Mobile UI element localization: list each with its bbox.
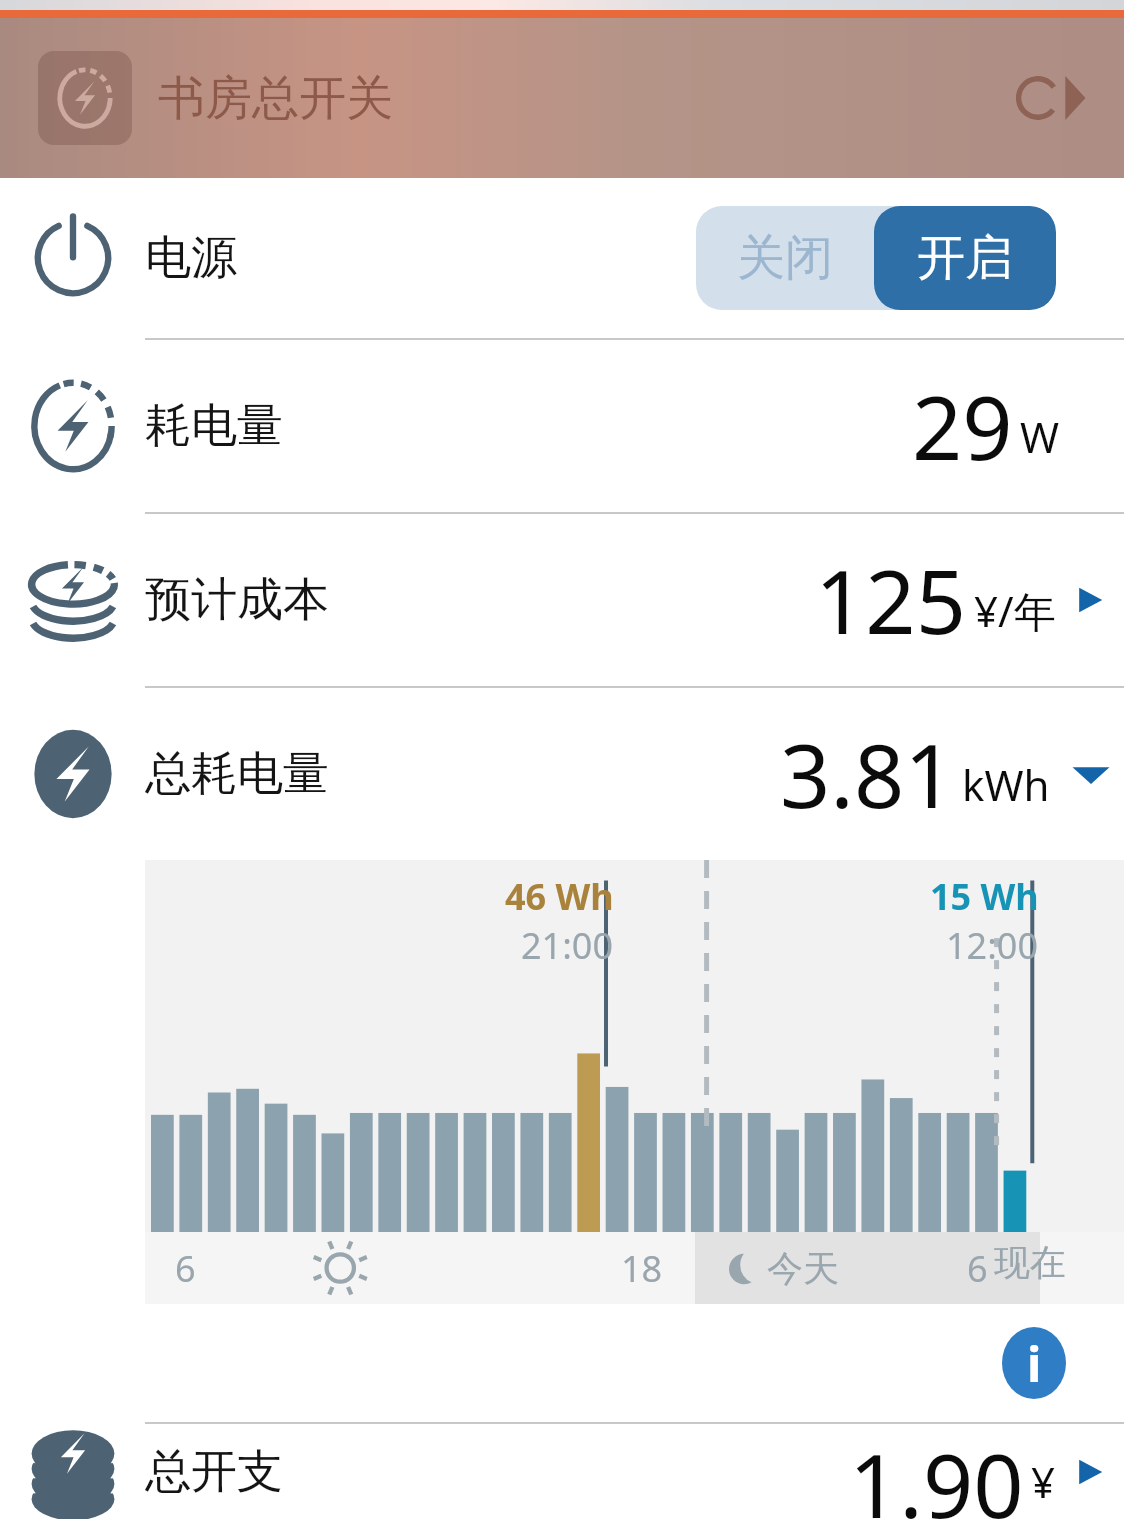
staticText: 18: [621, 1244, 663, 1293]
button[interactable]: 关闭: [696, 206, 1056, 310]
staticText: 预计成本: [145, 571, 329, 629]
staticText: 125: [815, 540, 967, 660]
staticText: 3.81: [780, 714, 955, 834]
staticText: ¥: [1031, 1453, 1056, 1510]
button[interactable]: 预计成本: [0, 514, 1124, 686]
staticText: 今天: [767, 1246, 839, 1291]
button[interactable]: 书房总开关: [0, 18, 1124, 178]
staticText: 总开支: [145, 1443, 283, 1501]
staticText: 21:00: [521, 921, 614, 970]
button[interactable]: 刷新: [1012, 68, 1098, 128]
staticText: 15 Wh: [930, 872, 1039, 921]
button[interactable]: 总耗电量: [0, 688, 1124, 860]
button[interactable]: 电源: [0, 178, 1124, 338]
staticText: 总耗电量: [145, 745, 329, 803]
staticText: 6: [967, 1244, 988, 1293]
staticText: 电源: [145, 229, 237, 287]
staticText: W: [1020, 408, 1060, 465]
staticText: i: [1027, 1331, 1042, 1396]
staticText: 关闭: [737, 228, 833, 288]
staticText: 12:00: [946, 921, 1039, 970]
staticText: ¥/年: [974, 582, 1056, 639]
button[interactable]: 耗电量: [0, 340, 1124, 512]
button[interactable]: 信息: [1002, 1327, 1066, 1399]
staticText: kWh: [962, 756, 1050, 813]
staticText: 书房总开关: [158, 69, 393, 128]
button[interactable]: 总开支: [0, 1424, 1124, 1519]
staticText: 6: [175, 1244, 196, 1293]
staticText: 46 Wh: [505, 872, 614, 921]
staticText: 29: [912, 366, 1013, 486]
staticText: 1.90: [849, 1424, 1024, 1519]
staticText: 现在: [994, 1240, 1066, 1285]
staticText: 耗电量: [145, 397, 283, 455]
staticText: 开启: [917, 228, 1013, 288]
